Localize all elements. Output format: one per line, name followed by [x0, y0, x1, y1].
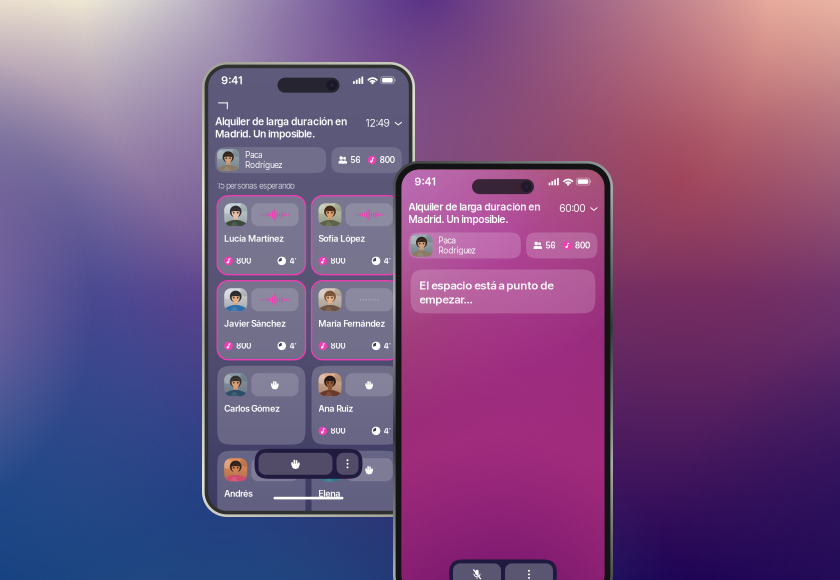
staticText: 60:00 — [559, 202, 585, 214]
staticText: 4' — [384, 341, 391, 351]
staticText: 800 — [236, 511, 251, 521]
staticText: Paca Rodríguez — [245, 150, 282, 170]
button[interactable]: Más opciones — [336, 453, 358, 475]
staticText: 800 — [330, 256, 345, 266]
staticText: 800 — [236, 256, 251, 266]
staticText: 4' — [384, 256, 391, 266]
staticText: Paca Rodríguez — [439, 235, 476, 255]
button[interactable]: Elena — [311, 451, 400, 530]
staticText: 4' — [289, 341, 296, 351]
staticText: Carlos Gómez — [224, 403, 280, 414]
button[interactable]: Minimizar — [215, 95, 232, 112]
staticText: 800 — [575, 240, 590, 250]
button[interactable]: 60:00 — [559, 201, 597, 214]
button[interactable]: Andrés — [217, 451, 305, 530]
button[interactable]: María Fernández — [311, 281, 400, 360]
button[interactable]: Paca Rodríguez — [215, 147, 326, 173]
staticText: Alquiler de larga duración en Madrid. Un… — [409, 201, 541, 225]
button[interactable]: Paca Rodríguez — [409, 232, 521, 258]
staticText: 9:41 — [415, 175, 436, 188]
staticText: 12:49 — [366, 117, 390, 129]
staticText: 15 personas esperando — [217, 181, 294, 191]
staticText: Elena — [318, 488, 340, 499]
staticText: Alquiler de larga duración en Madrid. Un… — [215, 115, 347, 140]
staticText: Sofía López — [318, 233, 365, 244]
staticText: 4' — [289, 256, 296, 266]
staticText: 800 — [236, 341, 251, 351]
staticText: Ana Ruiz — [318, 403, 353, 414]
button[interactable]: Carlos Gómez — [217, 366, 305, 445]
staticText: 4' — [289, 511, 296, 521]
staticText: 800 — [330, 426, 345, 436]
button[interactable]: Lucía Martínez — [217, 196, 305, 275]
staticText: 56 — [545, 240, 555, 250]
staticText: 9:41 — [221, 74, 242, 87]
staticText: María Fernández — [318, 318, 385, 329]
button[interactable]: Ana Ruiz — [311, 366, 400, 445]
staticText: 800 — [380, 155, 395, 165]
staticText: 56 — [350, 155, 360, 165]
button[interactable]: Javier Sánchez — [217, 281, 305, 360]
button[interactable]: 56 — [331, 147, 402, 173]
staticText: 800 — [330, 341, 345, 351]
button[interactable]: Sofía López — [311, 196, 400, 275]
staticText: El espacio está a punto de empezar... — [420, 278, 554, 306]
staticText: 4' — [384, 511, 391, 521]
button[interactable]: Más opciones — [505, 563, 553, 580]
button[interactable]: 56 — [526, 232, 597, 258]
staticText: Javier Sánchez — [224, 318, 286, 329]
staticText: Andrés — [224, 488, 252, 499]
button[interactable]: El espacio está a punto de empezar... — [411, 269, 595, 313]
staticText: 4' — [384, 426, 391, 436]
button[interactable]: Silenciar micrófono — [453, 563, 501, 580]
staticText: Lucía Martínez — [224, 233, 284, 244]
staticText: 800 — [330, 511, 345, 521]
button[interactable]: 12:49 — [366, 115, 402, 129]
button[interactable]: Levantar la mano — [258, 453, 332, 475]
